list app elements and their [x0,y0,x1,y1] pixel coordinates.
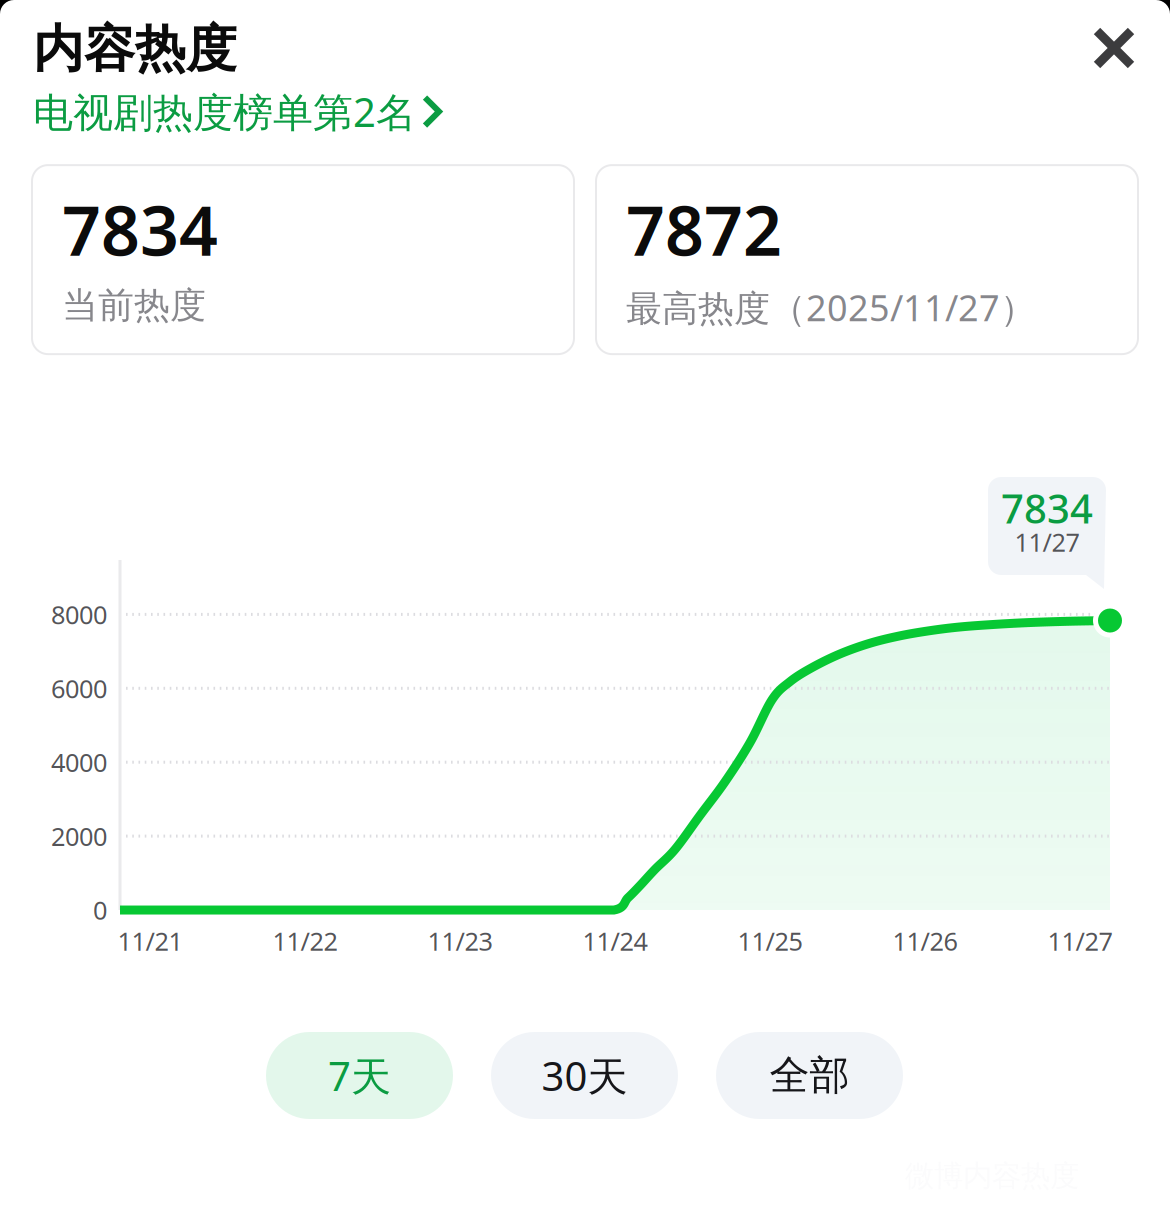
button[interactable]: 电视剧热度榜单第2名 [0,85,442,145]
staticText: 全部 [769,1051,849,1100]
button[interactable]: 30天 [491,1032,678,1119]
staticText: 7872 [626,184,782,274]
staticText: 11/27 [1014,525,1079,559]
staticText: 2000 [51,819,107,853]
staticText: 最高热度（2025/11/27） [626,283,1036,331]
button[interactable]: 全部 [716,1032,903,1119]
staticText: 30天 [541,1049,627,1102]
staticText: 8000 [51,598,107,631]
staticText: 7834 [1001,481,1093,534]
staticText: 6000 [51,671,107,705]
staticText: 11/27 [1047,924,1112,958]
staticText: 11/26 [892,924,957,958]
staticText: 11/24 [582,924,647,958]
button[interactable]: 关闭 [1077,0,1170,85]
staticText: 7834 [62,184,218,274]
staticText: 11/23 [427,924,492,958]
staticText: 当前热度 [62,283,206,328]
staticText: 4000 [51,745,107,779]
staticText: 内容热度 [33,18,237,80]
staticText: 11/21 [117,924,182,958]
staticText: 电视剧热度榜单第2名 [33,85,416,138]
button[interactable]: 7天 [266,1032,453,1119]
staticText: 11/22 [272,924,337,958]
staticText: 0 [93,893,107,927]
staticText: 11/25 [737,924,802,958]
staticText: 7天 [328,1049,391,1102]
